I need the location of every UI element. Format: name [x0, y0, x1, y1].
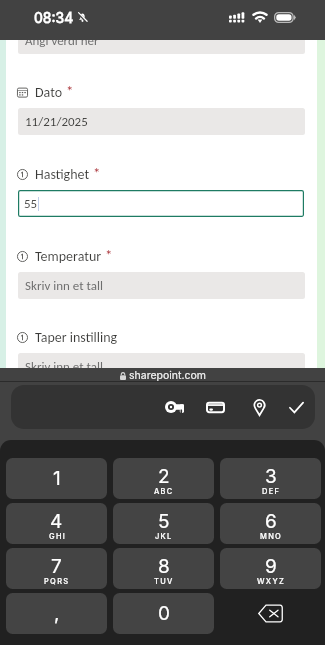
staticText: Temperatur	[35, 248, 102, 265]
button[interactable]: Angi verdi her	[18, 27, 305, 54]
staticText: M N O	[260, 532, 281, 541]
staticText: Skriv inn et tall	[25, 359, 103, 375]
staticText: 6	[265, 510, 277, 533]
button[interactable]: 7	[6, 548, 107, 589]
staticText: *	[66, 82, 74, 100]
staticText: Angi verdi her	[25, 33, 99, 49]
staticText: 55	[24, 196, 38, 212]
staticText: Hastighet	[35, 166, 90, 183]
button[interactable]: Credit card	[196, 385, 234, 429]
button[interactable]: 3	[220, 458, 321, 499]
staticText: A B C	[154, 487, 173, 496]
staticText: 9	[265, 555, 277, 578]
button[interactable]: Done	[277, 385, 315, 429]
button[interactable]: 5	[113, 503, 214, 544]
staticText: 3	[265, 465, 277, 488]
staticText: T U V	[154, 577, 173, 586]
button[interactable]: 6	[220, 503, 321, 544]
staticText: *	[105, 246, 113, 264]
button[interactable]: Skriv inn et tall	[18, 353, 305, 380]
staticText: D E F	[262, 487, 279, 496]
staticText: P Q R S	[44, 577, 69, 586]
button[interactable]: 9	[220, 548, 321, 589]
staticText: J K L	[155, 532, 172, 541]
staticText: 7	[51, 555, 62, 578]
staticText: Skriv inn et tall	[25, 278, 103, 294]
staticText: 08:34	[34, 9, 74, 26]
staticText: 2	[158, 465, 170, 488]
button[interactable]: 2	[113, 458, 214, 499]
staticText: sharepoint.com	[129, 369, 206, 382]
staticText: 0	[158, 602, 170, 625]
button[interactable]: 11/21/2025	[18, 108, 305, 135]
staticText: ,	[54, 602, 60, 625]
button[interactable]: Location	[240, 385, 278, 429]
button[interactable]: Backspace	[220, 593, 321, 634]
button[interactable]: 8	[113, 548, 214, 589]
button[interactable]: 55	[18, 190, 304, 217]
button[interactable]: 4	[6, 503, 107, 544]
staticText: Taper instilling	[35, 329, 118, 346]
button[interactable]: Passwords	[155, 385, 193, 429]
staticText: 5	[158, 510, 170, 533]
staticText: *	[93, 164, 101, 182]
staticText: G H I	[49, 532, 65, 541]
button[interactable]: 0	[113, 593, 214, 634]
staticText: Dato	[35, 84, 63, 101]
button[interactable]: ,	[6, 593, 107, 634]
button[interactable]: 1	[6, 458, 107, 499]
staticText: 1	[53, 467, 61, 490]
staticText: 4	[50, 510, 63, 533]
staticText: 11/21/2025	[25, 114, 88, 130]
staticText: W X Y Z	[257, 577, 284, 586]
staticText: 8	[158, 555, 170, 578]
button[interactable]: Skriv inn et tall	[18, 272, 305, 299]
